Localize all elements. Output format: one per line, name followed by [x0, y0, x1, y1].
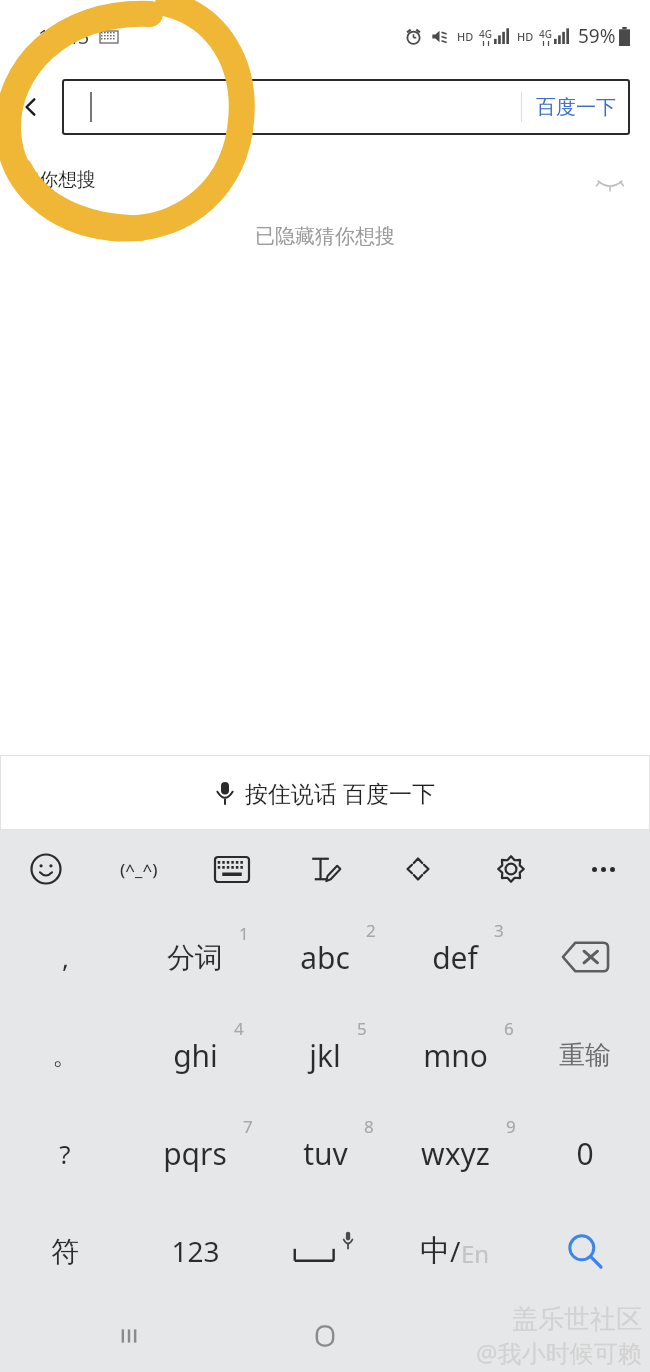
button[interactable]: Keyboard layout — [185, 830, 278, 908]
staticText: 4G — [479, 27, 492, 41]
button[interactable]: Search — [520, 1202, 650, 1300]
staticText: jkl — [309, 1035, 341, 1076]
staticText: mno — [423, 1035, 488, 1076]
staticText: abc — [300, 937, 350, 978]
button[interactable]: def — [390, 908, 520, 1006]
staticText: 9 — [506, 1115, 516, 1138]
button[interactable]: jkl — [260, 1006, 390, 1104]
button[interactable]: Home — [301, 1312, 349, 1360]
button[interactable]: Backspace — [520, 908, 650, 1006]
staticText: / — [450, 1232, 461, 1270]
staticText: 7 — [243, 1115, 253, 1138]
staticText: 8 — [364, 1115, 374, 1138]
staticText: pqrs — [163, 1133, 227, 1174]
button[interactable]: wxyz — [390, 1104, 520, 1202]
button[interactable]: More — [557, 830, 650, 908]
button[interactable]: 123 — [130, 1202, 260, 1300]
button[interactable]: 按住说话 百度一下 — [0, 755, 650, 830]
staticText: 3 — [494, 919, 504, 942]
staticText: tuv — [303, 1133, 348, 1174]
staticText: ghi — [173, 1035, 218, 1076]
staticText: 百度一下 — [536, 95, 616, 120]
staticText: 猜你想搜 — [20, 168, 96, 192]
staticText: 4 — [234, 1017, 244, 1040]
staticText: 1 — [239, 922, 249, 945]
staticText: 123 — [171, 1232, 220, 1270]
button[interactable]: ghi — [130, 1006, 260, 1104]
button[interactable]: 百度一下 — [522, 95, 630, 120]
button[interactable]: 重输 — [520, 1006, 650, 1104]
staticText: 0 — [576, 1133, 594, 1174]
button[interactable]: Handwriting — [278, 830, 371, 908]
staticText: 已隐藏猜你想搜 — [255, 224, 395, 249]
button[interactable]: 分词 — [130, 908, 260, 1006]
staticText: 分词 — [167, 940, 223, 975]
staticText: 4G — [539, 27, 552, 41]
staticText: 重输 — [559, 1039, 611, 1072]
button[interactable]: Kaomoji — [92, 830, 185, 908]
button[interactable]: mno — [390, 1006, 520, 1104]
staticText: 符 — [51, 1234, 79, 1269]
staticText: @我小时候可赖 — [476, 1336, 642, 1369]
staticText: (^_^) — [120, 858, 158, 881]
button[interactable]: Settings — [464, 830, 557, 908]
staticText: 按住说话 百度一下 — [245, 777, 435, 808]
staticText: 中 — [420, 1232, 450, 1270]
button[interactable]: Recents — [105, 1312, 153, 1360]
staticText: 5 — [357, 1017, 367, 1040]
staticText: 59% — [578, 23, 616, 49]
button[interactable]: , — [0, 908, 130, 1006]
staticText: def — [432, 937, 478, 978]
button[interactable]: Move cursor — [371, 830, 464, 908]
staticText: HD — [457, 29, 474, 44]
button[interactable]: abc — [260, 908, 390, 1006]
button[interactable]: Hide suggestions — [590, 164, 630, 204]
button[interactable]: tuv — [260, 1104, 390, 1202]
staticText: ? — [59, 1136, 71, 1171]
button[interactable]: 符 — [0, 1202, 130, 1300]
staticText: wxyz — [421, 1133, 490, 1174]
button[interactable]: Space — [260, 1202, 390, 1300]
staticText: 。 — [52, 1039, 78, 1072]
button[interactable]: ? — [0, 1104, 130, 1202]
staticText: 14:45 — [38, 23, 90, 50]
button[interactable]: 。 — [0, 1006, 130, 1104]
staticText: En — [461, 1237, 490, 1270]
button[interactable]: Switch language — [390, 1202, 520, 1300]
button[interactable]: 百度一下 — [62, 79, 630, 135]
button[interactable]: 0 — [520, 1104, 650, 1202]
staticText: HD — [517, 29, 534, 44]
button[interactable]: Back — [0, 72, 62, 142]
staticText: 6 — [504, 1017, 514, 1040]
button[interactable]: pqrs — [130, 1104, 260, 1202]
staticText: 2 — [366, 919, 376, 942]
staticText: , — [62, 940, 69, 975]
button[interactable]: Emoji — [0, 830, 92, 908]
staticText: 盖乐世社区 — [512, 1303, 642, 1336]
